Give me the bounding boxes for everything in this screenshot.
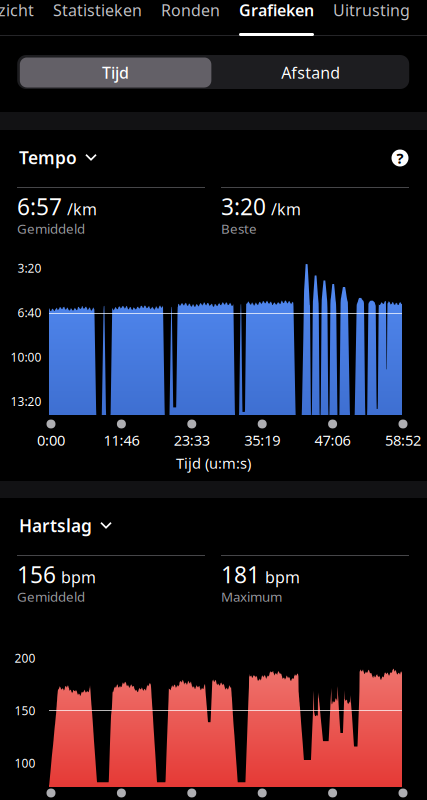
staticText: 156 [17,559,56,589]
staticText: 181 [221,559,260,589]
staticText: 58:52 [385,430,421,450]
staticText: Hartslag [19,514,92,537]
staticText: 6:57 [17,191,62,221]
button[interactable]: Hartslag [19,514,112,537]
button[interactable]: Tijd [20,57,211,87]
staticText: Beste [221,220,257,237]
button[interactable]: Afstand [215,57,407,87]
staticText: 150 [14,702,35,718]
staticText: 11:46 [103,430,139,450]
staticText: Gemiddeld [17,588,85,605]
staticText: bpm [61,566,96,588]
button[interactable]: Grafieken [239,0,314,21]
staticText: zicht [0,0,34,21]
staticText: /km [67,198,97,220]
staticText: ? [396,148,403,168]
staticText: Tijd (u:m:s) [176,453,251,473]
button[interactable]: Help [391,149,408,166]
staticText: 0:00 [37,430,65,450]
staticText: 35:19 [244,430,280,450]
staticText: Statistieken [53,0,142,21]
staticText: Grafieken [239,0,314,21]
staticText: 23:33 [174,430,210,450]
button[interactable]: Ronden [161,0,220,21]
staticText: 200 [14,650,35,666]
staticText: Ronden [161,0,220,21]
staticText: bpm [265,566,300,588]
staticText: 47:06 [315,430,351,450]
staticText: Maximum [221,588,282,605]
staticText: 3:20 [221,191,266,221]
staticText: Tempo [19,146,77,169]
staticText: Gemiddeld [17,220,85,237]
staticText: 3:20 [17,260,41,276]
staticText: /km [271,198,301,220]
staticText: Uitrusting [333,0,410,21]
staticText: Tijd [102,62,129,83]
staticText: Afstand [281,62,340,83]
staticText: 100 [14,755,35,771]
button[interactable]: Statistieken [53,0,142,21]
staticText: 10:00 [10,349,41,365]
button[interactable]: zicht [0,0,34,21]
staticText: 6:40 [17,305,41,321]
button[interactable]: Tempo [19,146,97,169]
button[interactable]: Uitrusting [333,0,410,21]
staticText: 13:20 [10,393,41,409]
